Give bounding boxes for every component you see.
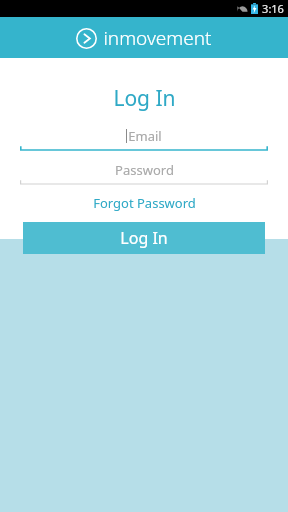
staticText: Password [115,161,174,179]
staticText: Forgot Password [93,194,196,212]
button[interactable]: Log In [23,222,265,254]
button[interactable]: Email [20,125,268,146]
button[interactable]: Password [20,159,268,180]
other: inmovement logo [76,28,97,49]
staticText: inmovement [103,25,212,51]
staticText: Log In [113,84,176,113]
button[interactable]: Forgot Password [83,192,206,214]
staticText: Email [128,127,162,145]
staticText: Log In [120,227,168,249]
staticText: 3:16 [262,1,284,16]
